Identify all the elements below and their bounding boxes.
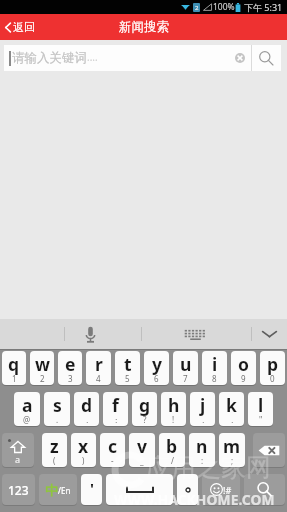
button[interactable]: Voice input xyxy=(65,319,115,349)
button[interactable]: i xyxy=(202,351,227,385)
button[interactable]: h xyxy=(161,392,186,426)
button[interactable]: p xyxy=(260,351,285,385)
staticText: n xyxy=(196,434,208,458)
staticText: @ xyxy=(23,414,31,425)
staticText: q xyxy=(8,352,20,376)
staticText: ? xyxy=(143,414,147,425)
button[interactable]: w xyxy=(30,351,54,385)
staticText: ) xyxy=(82,455,85,466)
staticText: ． xyxy=(199,415,207,425)
staticText: h xyxy=(168,393,180,417)
staticText: ' xyxy=(90,478,94,498)
staticText: r xyxy=(95,352,103,376)
staticText: u xyxy=(180,352,192,376)
staticText: - xyxy=(111,455,114,466)
staticText: 123 xyxy=(8,482,29,498)
button[interactable]: Numbers xyxy=(2,474,35,505)
button[interactable]: y xyxy=(144,351,169,385)
button[interactable]: b xyxy=(159,433,185,467)
button[interactable]: Search xyxy=(252,45,281,71)
button[interactable]: f xyxy=(103,392,128,426)
staticText: 请输入关键词 xyxy=(12,50,87,66)
button[interactable]: Keyboard layout xyxy=(170,319,220,349)
button[interactable]: r xyxy=(86,351,111,385)
staticText: 2 xyxy=(195,4,199,12)
staticText: 4 xyxy=(96,373,101,384)
staticText: 6 xyxy=(154,373,159,384)
button[interactable]: Space xyxy=(106,474,173,505)
staticText: 0 xyxy=(270,373,275,384)
staticText: j xyxy=(200,393,206,417)
button[interactable]: Hide keyboard xyxy=(252,319,287,349)
staticText: ： xyxy=(112,415,120,425)
staticText: a xyxy=(15,453,21,465)
staticText: _ xyxy=(140,455,144,466)
button[interactable]: Search xyxy=(244,474,285,505)
staticText: 应用之家网 xyxy=(146,452,271,483)
staticText: t xyxy=(124,352,132,376)
staticText: ． xyxy=(83,415,91,425)
button[interactable]: c xyxy=(100,433,125,467)
staticText: z xyxy=(50,434,59,458)
staticText: WWW.HACKHOME.COM xyxy=(114,490,275,509)
staticText: m xyxy=(223,434,241,458)
button[interactable]: v xyxy=(129,433,155,467)
staticText: 8 xyxy=(212,373,217,384)
button[interactable]: Apostrophe xyxy=(81,474,102,505)
button[interactable]: k xyxy=(219,392,244,426)
button[interactable]: e xyxy=(58,351,82,385)
button[interactable]: j xyxy=(190,392,215,426)
button[interactable]: Shift xyxy=(2,433,34,467)
button[interactable]: a xyxy=(14,392,40,426)
staticText: 下午 5:31 xyxy=(244,1,283,13)
staticText: i xyxy=(212,352,218,376)
staticText: l xyxy=(258,393,264,417)
button[interactable]: q xyxy=(2,351,26,385)
staticText: 返回 xyxy=(13,20,35,34)
button[interactable]: Period xyxy=(177,474,198,505)
button[interactable]: d xyxy=(74,392,99,426)
staticText: p xyxy=(267,352,279,376)
button[interactable]: n xyxy=(189,433,215,467)
staticText: 3 xyxy=(68,373,73,384)
button[interactable]: t xyxy=(115,351,140,385)
button[interactable]: 返回 xyxy=(0,14,43,40)
staticText: 7 xyxy=(183,373,188,384)
staticText: ; xyxy=(231,455,234,466)
staticText: 9 xyxy=(241,373,246,384)
staticText: o xyxy=(238,352,249,376)
staticText: ． xyxy=(228,415,236,425)
staticText: k xyxy=(226,393,237,417)
staticText: 中 xyxy=(45,482,58,498)
staticText: e xyxy=(65,352,76,376)
staticText: v xyxy=(137,434,147,458)
staticText: 2 xyxy=(40,373,45,384)
button[interactable]: Switch language xyxy=(39,474,77,505)
staticText: s xyxy=(53,393,62,417)
button[interactable]: s xyxy=(44,392,70,426)
staticText: w xyxy=(35,352,50,376)
staticText: y xyxy=(152,352,162,376)
button[interactable]: o xyxy=(231,351,256,385)
button[interactable]: Backspace xyxy=(253,433,285,467)
button[interactable]: l xyxy=(248,392,273,426)
button[interactable]: g xyxy=(132,392,157,426)
staticText: . xyxy=(56,414,59,425)
staticText: d xyxy=(81,393,93,417)
staticText: / xyxy=(171,455,174,466)
staticText: a xyxy=(22,393,33,417)
button[interactable]: Emoji and symbols xyxy=(202,474,240,505)
staticText: c xyxy=(108,434,118,458)
button[interactable]: x xyxy=(71,433,96,467)
staticText: b xyxy=(166,434,178,458)
button[interactable]: z xyxy=(42,433,67,467)
staticText: x xyxy=(78,434,89,458)
staticText: : xyxy=(201,455,204,466)
staticText: !# xyxy=(223,484,232,496)
staticText: /En xyxy=(58,485,71,496)
button[interactable]: m xyxy=(219,433,245,467)
staticText: 新闻搜索 xyxy=(119,19,169,35)
staticText: 5 xyxy=(125,373,130,384)
button[interactable]: Clear xyxy=(229,47,251,69)
button[interactable]: u xyxy=(173,351,198,385)
